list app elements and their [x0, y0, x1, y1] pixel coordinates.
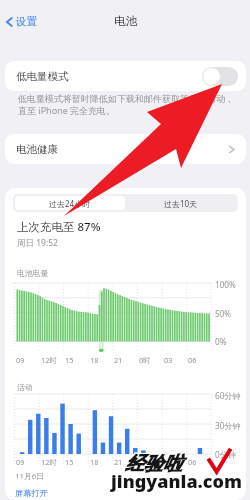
staticText: 过去10天 — [164, 198, 198, 209]
staticText: 屏幕打开 — [15, 488, 48, 498]
staticText: 周日 19:52 — [17, 237, 58, 249]
staticText: 过去24小时 — [49, 198, 91, 209]
button[interactable]: 设置 — [3, 15, 37, 28]
button[interactable]: 低电量模式开关 — [202, 67, 238, 86]
staticText: 06 — [188, 355, 197, 365]
staticText: 09 — [16, 355, 25, 365]
staticText: 50% — [215, 308, 232, 319]
staticText: 15 — [65, 457, 74, 467]
button[interactable]: 低电量模式 — [5, 61, 246, 91]
staticText: 电池 — [114, 14, 137, 28]
staticText: 18 — [90, 457, 99, 467]
staticText: 03 — [164, 457, 173, 467]
staticText: 经验啦 — [126, 451, 183, 475]
staticText: jingyanla.com — [111, 470, 242, 495]
staticText: 21 — [114, 457, 123, 467]
staticText: jingyanla.com — [110, 469, 241, 494]
button[interactable]: 过去10天 — [125, 196, 236, 210]
staticText: 60分钟 — [215, 390, 241, 401]
staticText: 0时 — [139, 457, 151, 467]
staticText: 18 — [90, 355, 99, 365]
staticText: 低电量模式将暂时降低如下载和邮件获取等后台活动，直至 iPhone 完全充电。 — [18, 93, 242, 116]
staticText: 电池电量 — [17, 268, 49, 278]
staticText: 0分钟 — [215, 449, 237, 460]
staticText: jingyanla.com — [111, 469, 242, 494]
button[interactable]: 电池健康 — [5, 134, 246, 164]
staticText: 经验啦 — [125, 452, 182, 476]
staticText: 低电量模式 — [16, 70, 69, 83]
staticText: 设置 — [16, 15, 37, 28]
staticText: jingyanla.com — [110, 468, 241, 493]
staticText: 11月6日 — [15, 471, 44, 482]
staticText: 21 — [114, 355, 123, 365]
staticText: 上次充电至 87% — [17, 219, 101, 235]
staticText: 活动 — [17, 382, 33, 392]
staticText: 0% — [215, 336, 227, 347]
staticText: 经验啦 — [126, 452, 183, 476]
staticText: 100% — [215, 279, 236, 290]
staticText: 0时 — [139, 355, 151, 365]
staticText: 经验啦 — [125, 453, 182, 477]
button[interactable]: 过去24小时 — [15, 196, 125, 210]
staticText: jingyanla.com — [110, 470, 241, 495]
staticText: 03 — [164, 355, 173, 365]
staticText: jingyanla.com — [112, 468, 243, 493]
staticText: 电池健康 — [16, 143, 58, 156]
staticText: 12时 — [41, 457, 57, 467]
staticText: 12时 — [41, 355, 57, 365]
staticText: 经验啦 — [126, 453, 183, 477]
staticText: 经验啦 — [125, 451, 182, 475]
staticText: 15 — [65, 355, 74, 365]
staticText: 09 — [16, 457, 25, 467]
staticText: jingyanla.com — [112, 469, 243, 494]
staticText: 经验啦 — [124, 452, 181, 476]
staticText: 经验啦 — [124, 453, 181, 477]
staticText: 06 — [188, 457, 197, 467]
staticText: jingyanla.com — [112, 470, 243, 495]
staticText: jingyanla.com — [111, 468, 242, 493]
staticText: 30分钟 — [215, 420, 241, 431]
staticText: 经验啦 — [124, 451, 181, 475]
